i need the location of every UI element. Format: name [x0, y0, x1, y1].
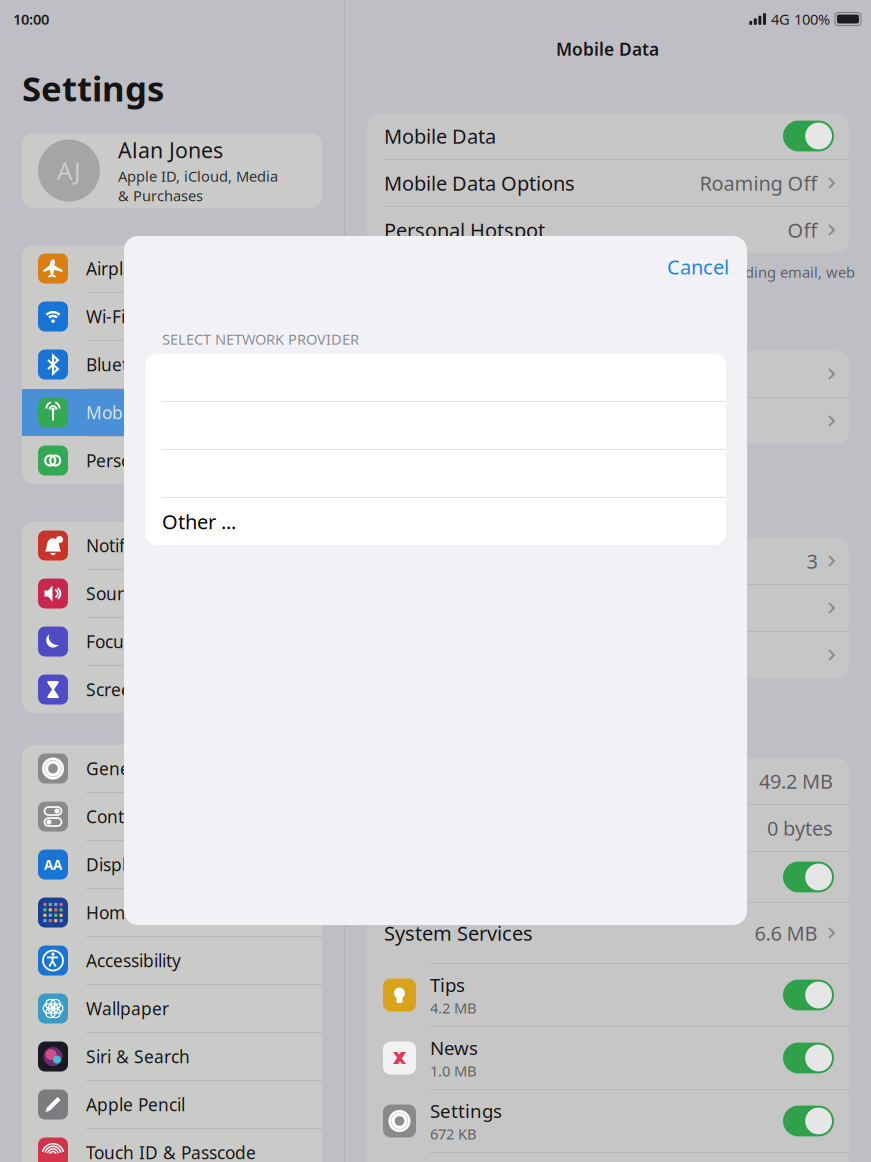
button[interactable]: AJ: [22, 133, 322, 208]
button[interactable]: Mobile Data Usage: [367, 632, 849, 678]
button[interactable]: Other ...: [145, 498, 726, 545]
staticText: Settings: [22, 65, 164, 111]
button[interactable]: Focus: [22, 618, 322, 665]
button[interactable]: Control Centre: [22, 793, 322, 840]
button[interactable]: Mobile Data: [22, 389, 322, 436]
button[interactable]: Wallpaper: [22, 985, 322, 1032]
staticText: Display & Brightness: [86, 853, 255, 876]
staticText: Mobile Data Options: [384, 170, 575, 196]
button[interactable]: Uber: [367, 852, 849, 902]
staticText: Apple Pencil: [86, 1093, 185, 1116]
staticText: AJ: [57, 155, 81, 186]
button[interactable]: Personal Hotspot: [367, 207, 849, 253]
staticText: Siri & Search: [86, 1045, 190, 1068]
staticText: Airplane Mode: [86, 257, 206, 280]
staticText: Tips: [430, 972, 465, 997]
staticText: Bluetooth: [86, 353, 165, 376]
staticText: Mobile Data: [86, 401, 185, 424]
staticText: 49.2 MB: [759, 768, 833, 794]
staticText: 4.2 MB: [430, 998, 477, 1018]
staticText: 4G 100%: [771, 9, 830, 29]
staticText: 6.6 MB: [754, 920, 817, 946]
button[interactable]: System Services: [367, 903, 849, 963]
button[interactable]: AA: [22, 841, 322, 888]
button[interactable]: Home Screen & Dock: [22, 889, 322, 936]
staticText: Mobile Data: [556, 37, 659, 60]
staticText: SELECT NETWORK PROVIDER: [162, 329, 359, 349]
button[interactable]: Sounds: [22, 570, 322, 617]
button[interactable]: News: [367, 1027, 849, 1089]
button[interactable]: Notifications: [22, 522, 322, 569]
button[interactable]: Siri & Search: [22, 1033, 322, 1080]
staticText: 10:00: [13, 9, 49, 29]
staticText: Personal Hotspot: [384, 217, 545, 243]
button[interactable]: Wi-Fi Calling: [367, 538, 849, 584]
staticText: 3: [806, 548, 817, 574]
button[interactable]: Wi-Fi: [22, 293, 322, 340]
button[interactable]: Calls on Other Devices: [367, 585, 849, 631]
staticText: Wi-Fi: [86, 305, 125, 328]
staticText: Focus: [86, 630, 132, 653]
staticText: Wallpaper: [86, 997, 169, 1020]
button[interactable]: Accessibility: [22, 937, 322, 984]
button[interactable]: SIM PIN: [367, 398, 849, 444]
button[interactable]: Settings: [367, 1090, 849, 1152]
staticText: Control Centre: [86, 805, 205, 828]
button[interactable]: Cancel: [649, 241, 747, 292]
button[interactable]: Screen Time: [22, 666, 322, 713]
staticText: Turn off mobile data to restrict all dat…: [383, 262, 855, 282]
button[interactable]: Mobile Data: [367, 113, 849, 159]
staticText: News: [430, 1035, 478, 1060]
staticText: Mobile Data: [384, 123, 496, 149]
button[interactable]: Airplane Mode: [22, 245, 322, 292]
staticText: 1.0 MB: [430, 1061, 477, 1081]
staticText: Home Screen & Dock: [86, 901, 259, 924]
staticText: Alan Jones: [118, 136, 223, 164]
staticText: System Services: [384, 920, 533, 946]
staticText: Accessibility: [86, 949, 181, 972]
button[interactable]: Touch ID & Passcode: [22, 1129, 322, 1162]
staticText: Sounds: [86, 582, 147, 605]
staticText: AA: [44, 856, 62, 873]
button[interactable]: Personal Hotspot: [22, 437, 322, 484]
button[interactable]: General: [22, 745, 322, 792]
staticText: Settings: [430, 1098, 502, 1123]
staticText: Personal Hotspot: [86, 449, 225, 472]
staticText: 672 KB: [430, 1124, 477, 1144]
button[interactable]: Tips: [367, 964, 849, 1026]
button[interactable]: Mobile Data Options: [367, 160, 849, 206]
button[interactable]: Current Period: [367, 758, 849, 804]
staticText: Roaming Off: [699, 170, 817, 196]
staticText: Touch ID & Passcode: [86, 1141, 256, 1162]
staticText: General: [86, 757, 151, 780]
staticText: Cancel: [667, 253, 729, 280]
button[interactable]: Apple Pencil: [22, 1081, 322, 1128]
button[interactable]: Mobile Data Network: [367, 351, 849, 397]
button[interactable]: Bluetooth: [22, 341, 322, 388]
staticText: Off: [787, 217, 817, 243]
button[interactable]: Current Period Roaming: [367, 805, 849, 851]
staticText: Other ...: [162, 508, 236, 535]
staticText: Notifications: [86, 534, 186, 557]
staticText: & Purchases: [118, 186, 203, 205]
staticText: 0 bytes: [767, 815, 833, 841]
staticText: Apple ID, iCloud, Media: [118, 166, 278, 186]
staticText: Screen Time: [86, 678, 187, 701]
